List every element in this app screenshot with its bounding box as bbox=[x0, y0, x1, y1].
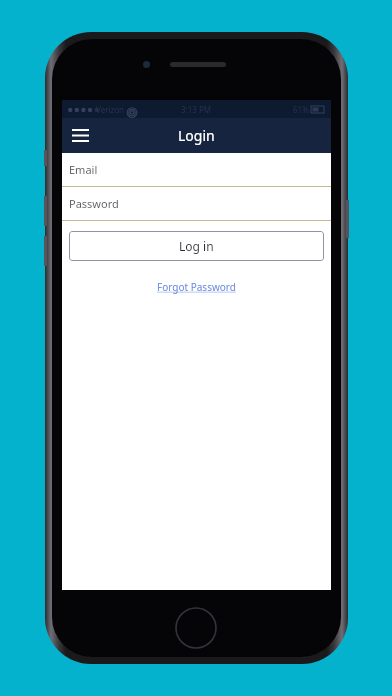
button[interactable]: Email bbox=[62, 153, 331, 187]
staticText: Password bbox=[69, 196, 119, 211]
staticText: Forgot Password bbox=[157, 280, 236, 294]
staticText: Email bbox=[69, 162, 98, 177]
button[interactable]: Menu bbox=[62, 121, 99, 150]
staticText: Verizon bbox=[96, 104, 125, 115]
staticText: 3:13 PM bbox=[181, 104, 212, 115]
button[interactable]: Forgot Password bbox=[149, 277, 244, 297]
staticText: Log in bbox=[179, 238, 214, 254]
staticText: Login bbox=[178, 126, 215, 145]
button[interactable]: Password bbox=[62, 187, 331, 221]
button[interactable]: Log in bbox=[69, 231, 324, 261]
staticText: 61% bbox=[293, 104, 309, 115]
